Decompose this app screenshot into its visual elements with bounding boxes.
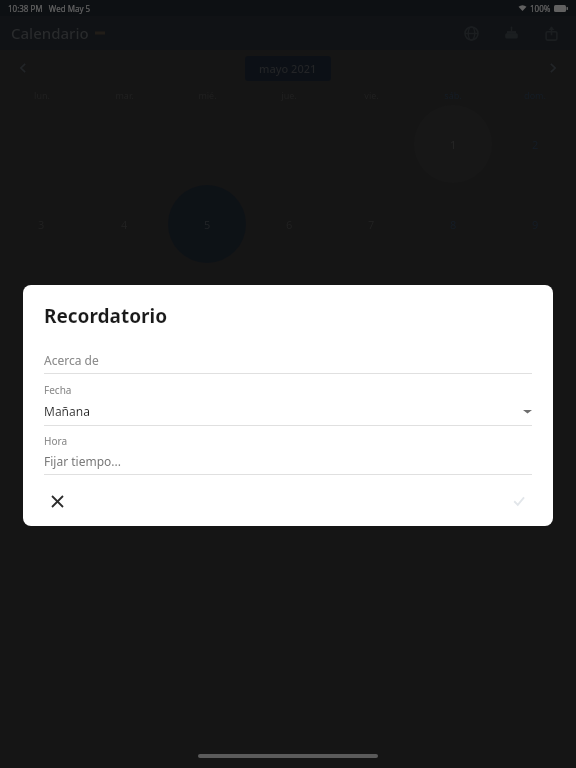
staticText: 100%	[530, 3, 551, 14]
staticText: 10:38 PM Wed May 5	[8, 3, 91, 14]
staticText: Mañana	[44, 403, 90, 419]
button[interactable]: 5	[166, 184, 248, 264]
button[interactable]: Idioma	[458, 20, 484, 46]
button[interactable]: Acerca de	[44, 346, 532, 373]
staticText: 4	[121, 217, 128, 232]
staticText: 5	[204, 217, 211, 232]
staticText: 8	[450, 217, 457, 232]
staticText: dom.	[524, 89, 546, 101]
staticText: Acerca de	[44, 352, 99, 368]
staticText: Fijar tiempo...	[44, 453, 121, 469]
staticText: sáb.	[444, 89, 462, 101]
staticText: Hora	[44, 434, 67, 448]
button[interactable]: Mes siguiente	[544, 59, 562, 77]
button[interactable]: Vacaciones	[41, 286, 272, 311]
button[interactable]: Mañana	[44, 402, 532, 420]
staticText: 2	[532, 137, 539, 152]
button[interactable]: Cancelar	[44, 488, 70, 514]
button[interactable]: Fijar tiempo...	[44, 453, 532, 469]
staticText: Recordatorio	[44, 303, 168, 329]
button[interactable]: Alarma	[41, 336, 272, 361]
staticText: mayo 2021	[259, 61, 317, 76]
staticText: 1	[450, 137, 457, 152]
staticText: Fecha	[44, 383, 72, 397]
button[interactable]: Guardar	[506, 488, 532, 514]
staticText: 9	[532, 217, 539, 232]
button[interactable]: Calendario	[11, 23, 105, 43]
button[interactable]: Compartir	[538, 20, 564, 46]
button[interactable]: mayo 2021	[245, 56, 331, 81]
staticText: Calendario	[11, 23, 89, 43]
button[interactable]: Cumpleaños	[498, 20, 524, 46]
button[interactable]: Mes anterior	[14, 59, 32, 77]
